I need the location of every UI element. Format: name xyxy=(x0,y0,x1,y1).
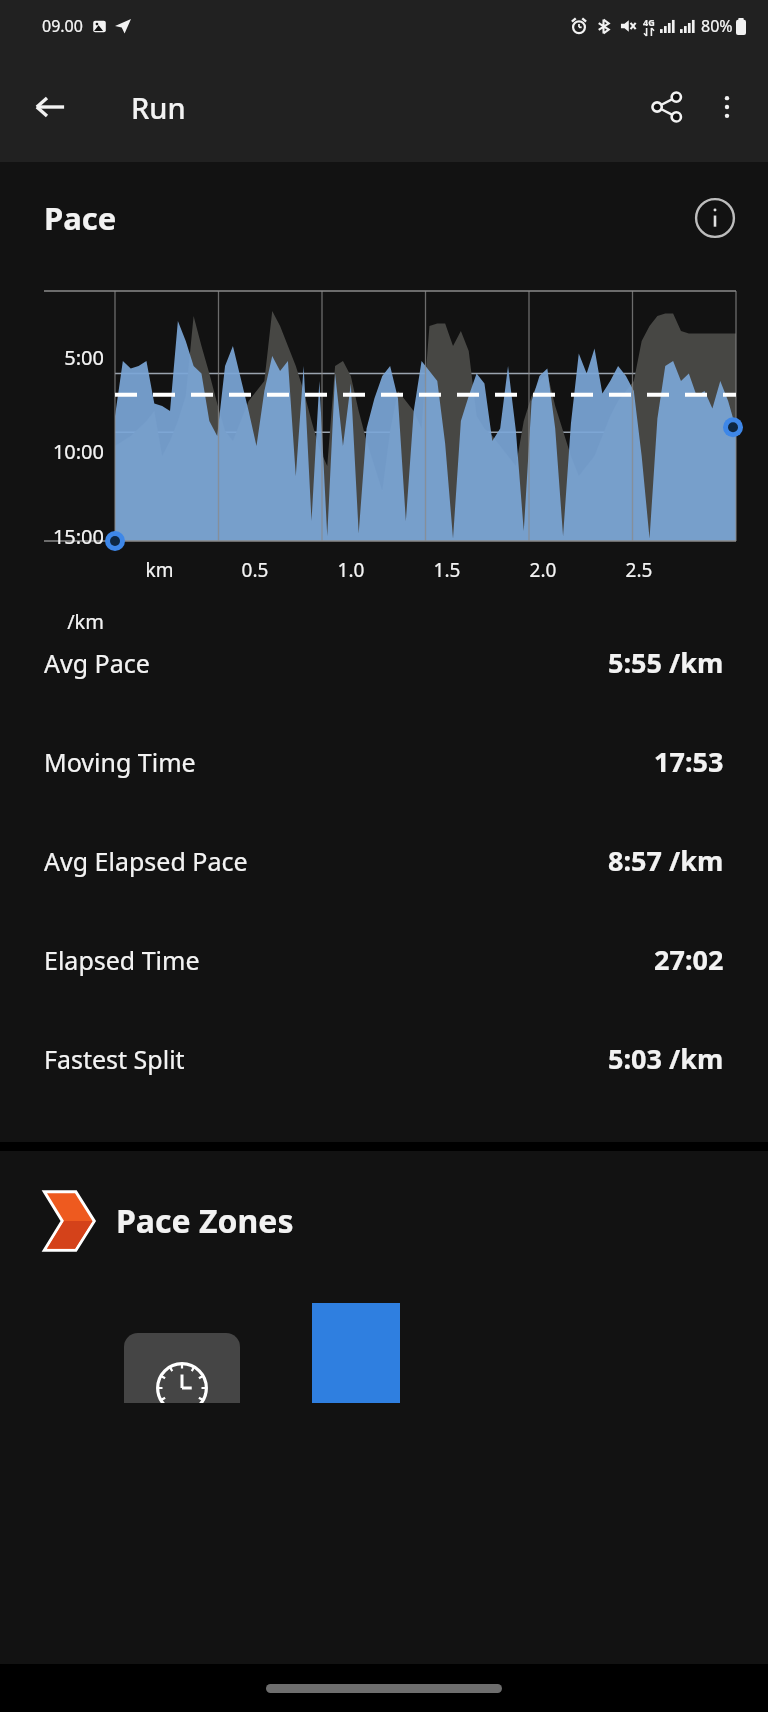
staticText: Avg Elapsed Pace xyxy=(44,844,248,878)
staticText: 4G xyxy=(643,16,655,28)
staticText: Fastest Split xyxy=(44,1042,185,1076)
staticText: 2.5 xyxy=(591,557,687,583)
button[interactable]: Avg Elapsed Pace xyxy=(0,811,768,910)
staticText: Elapsed Time xyxy=(44,943,200,977)
button[interactable]: Elapsed Time xyxy=(0,910,768,1009)
button[interactable]: More options xyxy=(698,78,756,136)
button[interactable]: Avg Pace xyxy=(0,613,768,712)
button[interactable]: Share xyxy=(636,76,698,138)
button[interactable]: Back xyxy=(16,73,84,141)
staticText: 10:00 xyxy=(14,438,104,465)
staticText: /km xyxy=(14,608,104,635)
staticText: 5:00 xyxy=(14,344,104,371)
button[interactable]: Fastest Split xyxy=(0,1009,768,1108)
button[interactable]: Moving Time xyxy=(0,712,768,811)
button[interactable]: Pace Zones xyxy=(0,1151,768,1291)
staticText: 17:53 xyxy=(654,743,724,780)
staticText: 8:57 /km xyxy=(608,842,724,879)
staticText: Moving Time xyxy=(44,745,196,779)
staticText: 0.5 xyxy=(207,557,303,583)
staticText: 15:00 xyxy=(14,523,104,550)
staticText: 1.5 xyxy=(399,557,495,583)
staticText: Run xyxy=(131,88,186,127)
staticText: 2.0 xyxy=(495,557,591,583)
staticText: km xyxy=(112,557,207,583)
button[interactable] xyxy=(124,1333,240,1403)
staticText: 5:55 /km xyxy=(608,644,724,681)
staticText: Pace Zones xyxy=(116,1199,294,1243)
staticText: 27:02 xyxy=(654,941,724,978)
staticText: 1.0 xyxy=(303,557,399,583)
staticText: Pace xyxy=(44,197,117,239)
button[interactable]: Info xyxy=(686,189,744,247)
staticText: 80% xyxy=(701,15,733,37)
staticText: 5:03 /km xyxy=(608,1040,724,1077)
staticText: 09.00 xyxy=(42,15,83,37)
staticText: Avg Pace xyxy=(44,646,150,680)
